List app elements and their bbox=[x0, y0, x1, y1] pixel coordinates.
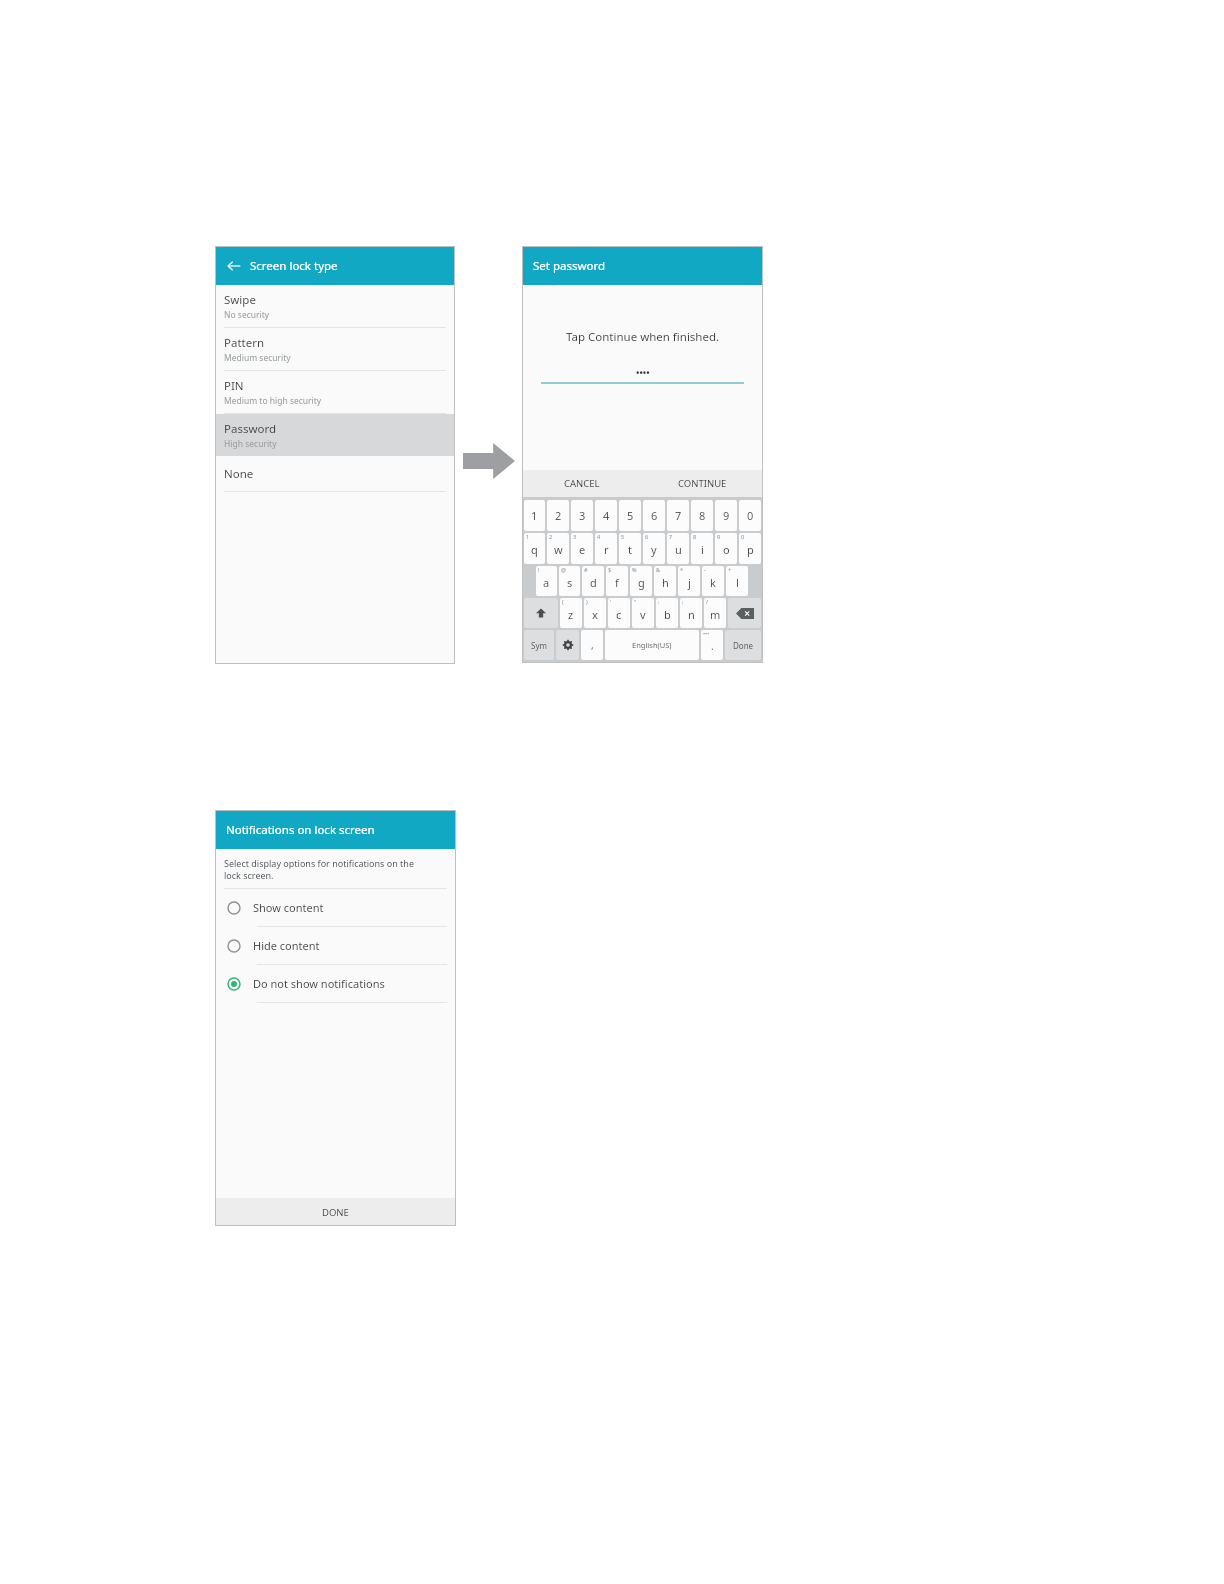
staticText: q bbox=[531, 542, 538, 557]
button[interactable]: + bbox=[726, 566, 748, 596]
button[interactable]: 4 bbox=[595, 533, 617, 564]
button[interactable]: 3 bbox=[571, 533, 593, 564]
staticText: z bbox=[568, 607, 574, 622]
staticText: h bbox=[662, 575, 669, 590]
staticText: * bbox=[680, 566, 684, 573]
staticText: CANCEL bbox=[564, 477, 600, 490]
staticText: . bbox=[711, 639, 714, 653]
staticText: CONTINUE bbox=[678, 477, 727, 490]
staticText: 7 bbox=[675, 508, 682, 523]
button[interactable]: Hide content bbox=[215, 927, 456, 965]
staticText: # bbox=[584, 566, 588, 573]
staticText: j bbox=[688, 575, 691, 590]
button[interactable]: English(US) bbox=[605, 630, 699, 660]
button[interactable]: PIN bbox=[215, 371, 455, 414]
staticText: u bbox=[675, 542, 682, 557]
button[interactable]: Do not show notifications bbox=[215, 965, 456, 1003]
button[interactable]: 6 bbox=[643, 533, 665, 564]
staticText: o bbox=[723, 542, 730, 557]
staticText: l bbox=[736, 575, 739, 590]
staticText: No security bbox=[224, 309, 270, 321]
button[interactable]: ••• bbox=[701, 630, 723, 660]
staticText: Screen lock type bbox=[250, 258, 338, 274]
staticText: b bbox=[664, 607, 671, 622]
staticText: 7 bbox=[669, 533, 673, 540]
button[interactable]: 9 bbox=[715, 500, 737, 531]
button[interactable]: @ bbox=[559, 566, 580, 596]
button[interactable]: Shift bbox=[524, 598, 558, 628]
button[interactable]: ) bbox=[584, 598, 606, 628]
button[interactable]: 0 bbox=[739, 500, 761, 531]
staticText: + bbox=[728, 566, 732, 573]
staticText: ••• bbox=[703, 630, 710, 637]
staticText: c bbox=[616, 607, 622, 622]
button[interactable]: CANCEL bbox=[522, 470, 642, 497]
button[interactable]: Done bbox=[725, 630, 761, 660]
staticText: ; bbox=[682, 598, 684, 605]
staticText: Do not show notifications bbox=[253, 976, 385, 991]
staticText: i bbox=[701, 542, 704, 557]
staticText: / bbox=[706, 598, 709, 605]
button[interactable]: 2 bbox=[547, 533, 569, 564]
button[interactable]: 7 bbox=[667, 500, 689, 531]
button[interactable]: 8 bbox=[691, 533, 713, 564]
button[interactable]: 4 bbox=[595, 500, 617, 531]
button[interactable]: 3 bbox=[571, 500, 593, 531]
button[interactable]: / bbox=[704, 598, 726, 628]
button[interactable]: 2 bbox=[547, 500, 569, 531]
button[interactable]: DONE bbox=[215, 1198, 456, 1226]
button[interactable]: Settings bbox=[556, 630, 579, 660]
staticText: 4 bbox=[603, 508, 610, 523]
button[interactable]: : bbox=[656, 598, 678, 628]
staticText: ! bbox=[538, 566, 540, 573]
button[interactable]: Pattern bbox=[215, 328, 455, 371]
button[interactable]: 0 bbox=[739, 533, 761, 564]
staticText: y bbox=[651, 542, 657, 557]
button[interactable]: " bbox=[632, 598, 654, 628]
staticText: 4 bbox=[597, 533, 601, 540]
staticText: 6 bbox=[651, 508, 658, 523]
staticText: Show content bbox=[253, 900, 324, 915]
button[interactable]: 8 bbox=[691, 500, 713, 531]
button[interactable]: 5 bbox=[619, 500, 641, 531]
button[interactable]: 6 bbox=[643, 500, 665, 531]
button[interactable]: 5 bbox=[619, 533, 641, 564]
button[interactable]: & bbox=[654, 566, 676, 596]
button[interactable]: Swipe bbox=[215, 285, 455, 328]
button[interactable]: % bbox=[630, 566, 652, 596]
button[interactable]: 7 bbox=[667, 533, 689, 564]
staticText: High security bbox=[224, 438, 277, 450]
button[interactable]: 9 bbox=[715, 533, 737, 564]
staticText: Select display options for notifications… bbox=[224, 857, 414, 869]
button[interactable]: - bbox=[702, 566, 724, 596]
staticText: Password bbox=[224, 421, 277, 437]
button[interactable]: ' bbox=[608, 598, 630, 628]
button[interactable]: 1 bbox=[524, 500, 545, 531]
button[interactable]: # bbox=[582, 566, 604, 596]
button[interactable]: ! bbox=[536, 566, 557, 596]
button[interactable]: Back bbox=[223, 255, 245, 277]
button[interactable]: $ bbox=[606, 566, 628, 596]
staticText: - bbox=[704, 566, 706, 573]
staticText: v bbox=[640, 607, 646, 622]
button[interactable]: Sym bbox=[524, 630, 554, 660]
staticText: 6 bbox=[645, 533, 649, 540]
button[interactable]: , bbox=[581, 630, 603, 660]
staticText: lock screen. bbox=[224, 869, 274, 881]
button[interactable]: ; bbox=[680, 598, 702, 628]
button[interactable]: Password bbox=[215, 414, 455, 456]
staticText: 8 bbox=[699, 508, 706, 523]
staticText: Tap Continue when finished. bbox=[566, 329, 720, 345]
staticText: Pattern bbox=[224, 335, 265, 351]
button[interactable]: None bbox=[215, 456, 455, 492]
staticText: n bbox=[688, 607, 695, 622]
button[interactable]: ( bbox=[560, 598, 582, 628]
button[interactable]: * bbox=[678, 566, 700, 596]
button[interactable]: Backspace bbox=[728, 598, 761, 628]
button[interactable]: 1 bbox=[524, 533, 545, 564]
button[interactable]: Show content bbox=[215, 889, 456, 927]
staticText: " bbox=[634, 598, 637, 605]
staticText: e bbox=[579, 542, 586, 557]
button[interactable]: CONTINUE bbox=[642, 470, 763, 497]
staticText: 1 bbox=[531, 508, 538, 523]
